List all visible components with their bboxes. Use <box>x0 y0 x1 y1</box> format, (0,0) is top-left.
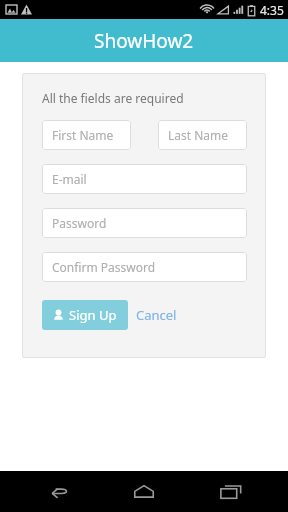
button[interactable]: Home <box>114 471 174 512</box>
button[interactable]: Sign Up <box>42 300 128 330</box>
staticText: Password <box>52 215 107 231</box>
button[interactable]: Confirm Password <box>42 252 247 282</box>
staticText: First Name <box>52 127 114 143</box>
staticText: 4:35 <box>260 2 284 18</box>
button[interactable]: Back <box>27 471 87 512</box>
button[interactable]: Password <box>42 208 247 238</box>
staticText: E-mail <box>52 171 87 187</box>
staticText: ShowHow2 <box>94 28 194 54</box>
staticText: Sign Up <box>69 306 117 324</box>
staticText: Last Name <box>168 127 229 143</box>
staticText: All the fields are required <box>42 90 184 106</box>
staticText: Cancel <box>136 306 177 324</box>
button[interactable]: Last Name <box>158 120 247 150</box>
button[interactable]: E-mail <box>42 164 247 194</box>
staticText: Confirm Password <box>52 259 156 275</box>
button[interactable]: First Name <box>42 120 131 150</box>
button[interactable]: Cancel <box>128 300 185 330</box>
button[interactable]: Recent apps <box>201 471 261 512</box>
